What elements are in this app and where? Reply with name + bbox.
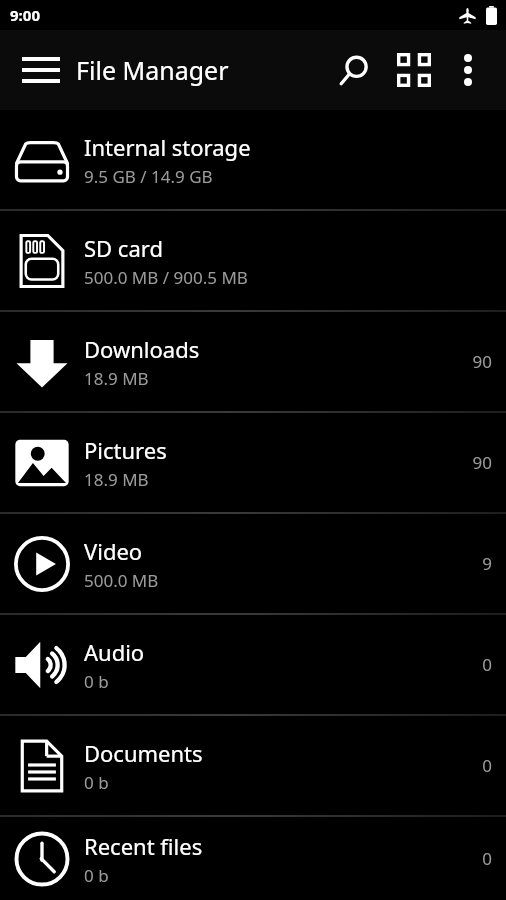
staticText: 500.0 MB / 900.5 MB: [84, 266, 248, 289]
staticText: Downloads: [84, 334, 200, 364]
button[interactable]: Audio: [0, 615, 506, 714]
staticText: SD card: [84, 233, 163, 263]
button[interactable]: Search: [328, 44, 380, 96]
staticText: 0: [482, 847, 492, 870]
staticText: 0: [482, 754, 492, 777]
staticText: Documents: [84, 738, 203, 768]
staticText: 9.5 GB / 14.9 GB: [84, 165, 213, 188]
button[interactable]: Switch to grid view: [388, 44, 440, 96]
button[interactable]: Pictures: [0, 413, 506, 512]
button[interactable]: Video: [0, 514, 506, 613]
staticText: Recent files: [84, 831, 203, 861]
button[interactable]: Recent files: [0, 817, 506, 900]
button[interactable]: Downloads: [0, 312, 506, 411]
staticText: Internal storage: [84, 132, 251, 162]
staticText: 0 b: [84, 670, 109, 693]
button[interactable]: SD card: [0, 211, 506, 310]
button[interactable]: Open navigation menu: [18, 47, 64, 93]
staticText: 500.0 MB: [84, 569, 159, 592]
staticText: Audio: [84, 637, 145, 667]
staticText: 18.9 MB: [84, 468, 149, 491]
button[interactable]: Documents: [0, 716, 506, 815]
staticText: 90: [472, 451, 492, 474]
staticText: 18.9 MB: [84, 367, 149, 390]
staticText: 0: [482, 653, 492, 676]
staticText: Pictures: [84, 435, 167, 465]
button[interactable]: Internal storage: [0, 110, 506, 209]
staticText: 9:00: [10, 5, 40, 25]
staticText: 0 b: [84, 864, 109, 887]
button[interactable]: More options: [444, 46, 492, 94]
staticText: Video: [84, 536, 143, 566]
staticText: File Manager: [76, 53, 229, 87]
staticText: 9: [482, 552, 492, 575]
staticText: 0 b: [84, 771, 109, 794]
staticText: 90: [472, 350, 492, 373]
